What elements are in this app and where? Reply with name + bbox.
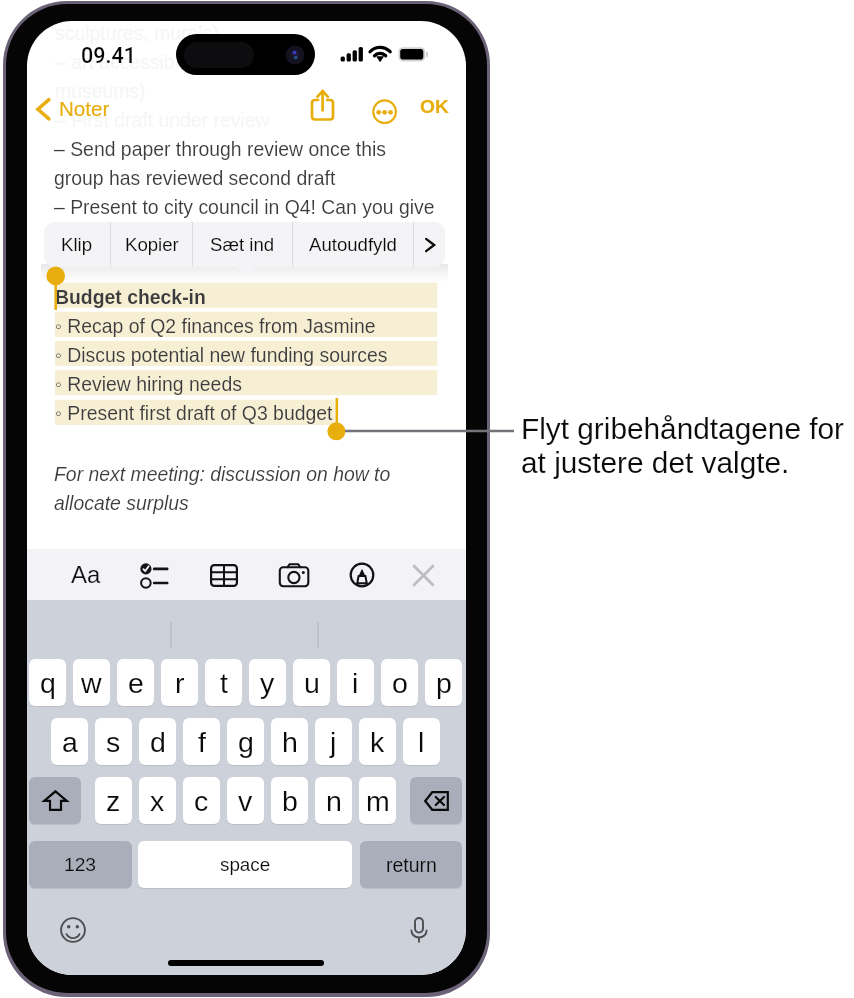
staticText: d — [150, 726, 166, 758]
button[interactable]: Emoji — [55, 912, 91, 948]
button[interactable]: s — [95, 718, 132, 765]
staticText: w — [81, 667, 102, 699]
staticText: x — [150, 785, 165, 817]
button[interactable]: Skift — [29, 777, 81, 824]
button[interactable]: Kamera — [272, 553, 316, 597]
staticText: z — [106, 785, 121, 817]
staticText: allocate surplus — [54, 492, 189, 514]
button[interactable]: u — [293, 659, 330, 706]
button[interactable]: e — [117, 659, 154, 706]
button[interactable]: n — [315, 777, 352, 824]
staticText: h — [282, 726, 298, 758]
button[interactable]: Mere — [360, 87, 400, 127]
button[interactable]: v — [227, 777, 264, 824]
button[interactable]: f — [183, 718, 220, 765]
staticText: e — [128, 667, 144, 699]
staticText: p — [436, 667, 452, 699]
button[interactable]: Autoudfyld — [293, 222, 413, 267]
staticText: return — [386, 854, 437, 876]
staticText: ◦ Discus potential new funding sources — [55, 344, 388, 366]
staticText: – art accessible... (free — [55, 51, 252, 73]
staticText: ◦ Recap of Q2 finances from Jasmine — [55, 315, 376, 337]
button[interactable]: x — [139, 777, 176, 824]
staticText: g — [238, 726, 254, 758]
button[interactable]: y — [249, 659, 286, 706]
staticText: Autoudfyld — [309, 234, 397, 255]
staticText: v — [238, 785, 253, 817]
staticText: y — [260, 667, 275, 699]
button[interactable]: Kopier — [111, 222, 192, 267]
staticText: Sæt ind — [210, 234, 275, 255]
staticText: ◦ Present first draft of Q3 budget — [55, 402, 333, 424]
button[interactable]: p — [425, 659, 462, 706]
staticText: 123 — [64, 854, 97, 875]
button[interactable]: i — [337, 659, 374, 706]
staticText: o — [392, 667, 408, 699]
staticText: b — [282, 785, 298, 817]
button[interactable]: return — [360, 841, 462, 888]
button[interactable]: a — [51, 718, 88, 765]
staticText: museums) — [55, 80, 146, 102]
button[interactable]: 123 — [29, 841, 132, 888]
button[interactable]: h — [271, 718, 308, 765]
staticText: n — [326, 785, 342, 817]
staticText: m — [366, 785, 390, 817]
button[interactable]: b — [271, 777, 308, 824]
button[interactable]: Del — [304, 83, 342, 125]
button[interactable]: r — [161, 659, 198, 706]
button[interactable]: m — [359, 777, 396, 824]
staticText: j — [330, 726, 337, 758]
staticText: – First draft under review — [55, 109, 270, 131]
staticText: t — [220, 667, 228, 699]
staticText: Kopier — [125, 234, 179, 255]
staticText: l — [418, 726, 425, 758]
staticText: sculptures, murals) — [55, 22, 219, 44]
button[interactable]: w — [73, 659, 110, 706]
staticText: Aa — [71, 561, 101, 588]
button[interactable]: g — [227, 718, 264, 765]
staticText: f — [198, 726, 206, 758]
button[interactable]: o — [381, 659, 418, 706]
staticText: u — [304, 667, 320, 699]
button[interactable]: Sæt ind — [193, 222, 292, 267]
button[interactable]: Noter — [32, 92, 110, 124]
button[interactable]: Flere muligheder — [414, 222, 445, 267]
staticText: q — [40, 667, 56, 699]
button[interactable]: Diktering — [401, 912, 437, 948]
staticText: Flyt gribehåndtagene for at justere det … — [521, 412, 845, 479]
staticText: c — [194, 785, 209, 817]
staticText: ◦ Review hiring needs — [55, 373, 242, 395]
staticText: k — [370, 726, 385, 758]
staticText: OK — [420, 96, 449, 117]
staticText: space — [220, 854, 271, 875]
staticText: s — [106, 726, 121, 758]
button[interactable]: Markering — [340, 553, 384, 597]
button[interactable]: z — [95, 777, 132, 824]
button[interactable]: q — [29, 659, 66, 706]
staticText: Klip — [61, 234, 93, 255]
staticText: r — [175, 667, 185, 699]
button[interactable]: j — [315, 718, 352, 765]
staticText: i — [352, 667, 359, 699]
staticText: 09.41 — [81, 43, 136, 68]
button[interactable]: d — [139, 718, 176, 765]
button[interactable]: Aa — [64, 552, 108, 597]
button[interactable]: c — [183, 777, 220, 824]
button[interactable]: OK — [416, 89, 453, 124]
button[interactable]: t — [205, 659, 242, 706]
staticText: a — [62, 726, 78, 758]
button[interactable]: Tabel — [202, 553, 246, 597]
staticText: Noter — [59, 97, 110, 120]
button[interactable]: Slet — [410, 777, 462, 824]
button[interactable]: Luk — [401, 553, 445, 597]
staticText: – Send paper through review once this — [54, 138, 387, 160]
button[interactable]: Klip — [44, 222, 110, 267]
button[interactable]: space — [138, 841, 352, 888]
staticText: – Present to city council in Q4! Can you… — [54, 196, 435, 218]
button[interactable]: l — [403, 718, 440, 765]
staticText: group has reviewed second draft — [54, 167, 336, 189]
staticText: For next meeting: discussion on how to — [54, 463, 391, 485]
button[interactable]: k — [359, 718, 396, 765]
staticText: Budget check-in — [55, 286, 206, 308]
button[interactable]: Tjekliste — [132, 553, 176, 597]
